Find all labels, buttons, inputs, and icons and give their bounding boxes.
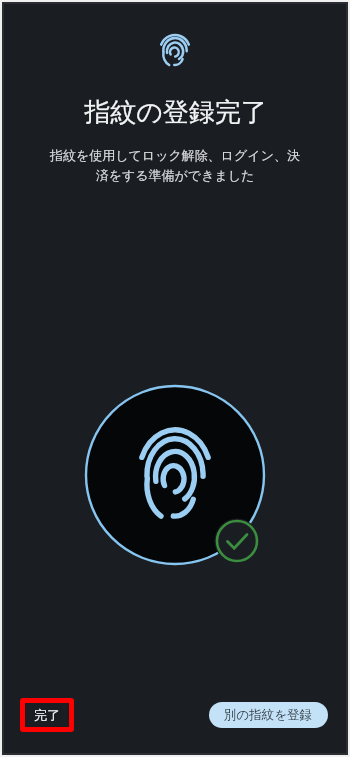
button[interactable]: 別の指紋を登録 <box>209 702 328 728</box>
button[interactable]: 完了 <box>25 703 69 727</box>
staticText: 指紋を使用してロック解除、ログイン、決済をする準備ができました <box>47 147 303 184</box>
staticText: 別の指紋を登録 <box>224 707 313 723</box>
staticText: 完了 <box>34 707 60 723</box>
staticText: 指紋の登録完了 <box>84 96 267 129</box>
